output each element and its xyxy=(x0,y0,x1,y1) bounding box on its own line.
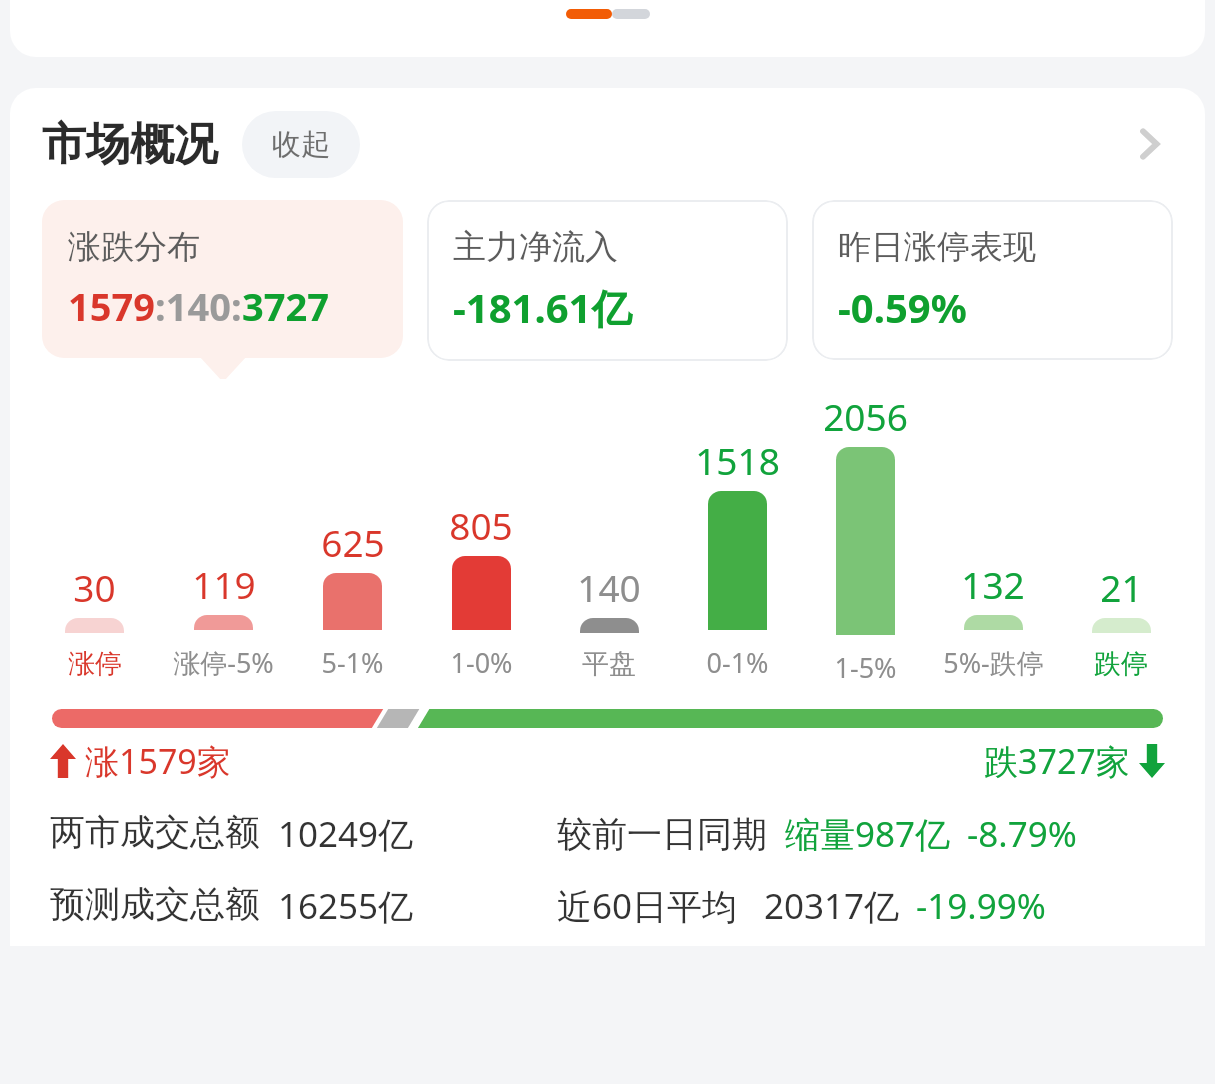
staticText: 1579 xyxy=(68,280,155,332)
staticText: -0.59% xyxy=(838,280,967,334)
staticText: -19.99% xyxy=(916,882,1046,930)
staticText: 5%-跌停 xyxy=(943,644,1044,681)
button[interactable]: 收起 xyxy=(242,111,360,178)
staticText: 近60日平均 xyxy=(557,882,738,930)
staticText: 两市成交总额 xyxy=(50,810,260,854)
staticText: 收起 xyxy=(272,126,330,163)
staticText: 昨日涨停表现 xyxy=(838,226,1036,268)
staticText: 较前一日同期 xyxy=(557,812,767,856)
button[interactable]: 昨日涨停表现 xyxy=(812,200,1173,360)
staticText: 跌停 xyxy=(1094,647,1148,681)
staticText: 0-1% xyxy=(706,644,769,681)
button[interactable]: 主力净流入 xyxy=(427,200,788,361)
staticText: 涨1579家 xyxy=(85,738,231,784)
staticText: :140: xyxy=(155,280,242,332)
staticText: 3727 xyxy=(242,280,329,332)
staticText: 1-0% xyxy=(450,644,513,681)
staticText: 缩量987亿 xyxy=(785,810,951,858)
button[interactable]: 涨跌分布 xyxy=(42,200,403,358)
staticText: -181.61亿 xyxy=(453,280,632,335)
staticText: 30 xyxy=(73,562,116,612)
staticText: 119 xyxy=(192,559,256,609)
staticText: 涨停 xyxy=(68,647,122,681)
staticText: 平盘 xyxy=(582,647,636,681)
staticText: 132 xyxy=(961,559,1025,609)
staticText: 主力净流入 xyxy=(453,226,618,268)
staticText: 20317亿 xyxy=(764,882,900,930)
staticText: 10249亿 xyxy=(278,810,414,858)
staticText: 跌3727家 xyxy=(984,738,1130,784)
staticText: 涨跌分布 xyxy=(68,226,200,268)
button[interactable]: More market overview xyxy=(1121,116,1177,172)
staticText: 预测成交总额 xyxy=(50,882,260,926)
staticText: 2056 xyxy=(823,391,908,441)
staticText: 805 xyxy=(449,500,513,550)
staticText: 140 xyxy=(577,562,641,612)
staticText: -8.79% xyxy=(967,810,1077,858)
staticText: 1518 xyxy=(695,435,780,485)
staticText: 涨停-5% xyxy=(173,644,274,681)
staticText: 21 xyxy=(1100,562,1143,612)
button[interactable]: 市场概况 xyxy=(10,88,1205,200)
staticText: 市场概况 xyxy=(42,117,218,172)
staticText: 16255亿 xyxy=(278,882,414,930)
staticText: 1-5% xyxy=(834,649,897,681)
staticText: 5-1% xyxy=(321,644,384,681)
staticText: 625 xyxy=(321,517,385,567)
